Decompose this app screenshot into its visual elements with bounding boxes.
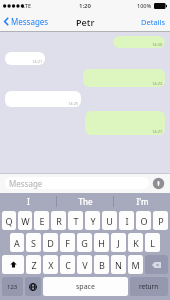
button[interactable]: 123 — [2, 277, 23, 296]
staticText: Q — [5, 215, 13, 227]
staticText: S — [31, 237, 36, 249]
button[interactable]: I — [0, 193, 56, 209]
staticText: I — [125, 215, 129, 227]
staticText: Z — [31, 259, 37, 271]
button[interactable]: V — [77, 255, 92, 274]
staticText: Message — [9, 178, 43, 189]
staticText: 14:22 — [152, 81, 163, 86]
button[interactable]: Backspace — [145, 255, 168, 274]
button[interactable]: M — [128, 255, 143, 274]
staticText: LTE — [22, 2, 31, 9]
staticText: 14:25 — [68, 101, 79, 106]
staticText: F — [65, 237, 70, 249]
staticText: The — [78, 196, 93, 207]
button[interactable]: E — [34, 211, 49, 230]
button[interactable]: Z — [26, 255, 41, 274]
button[interactable]: The — [57, 193, 113, 209]
button[interactable]: W — [18, 211, 32, 230]
staticText: E — [39, 215, 45, 227]
staticText: C — [65, 259, 71, 271]
button[interactable]: Q — [2, 211, 16, 230]
staticText: 14:27 — [152, 129, 163, 134]
button[interactable]: 14:27 — [85, 111, 165, 135]
staticText: A — [14, 237, 20, 249]
button[interactable]: D — [43, 233, 58, 252]
staticText: J — [117, 237, 120, 249]
staticText: 100% — [137, 2, 152, 9]
staticText: H — [98, 237, 105, 249]
button[interactable]: O — [136, 211, 151, 230]
button[interactable]: Message — [5, 177, 149, 189]
button[interactable]: space — [43, 277, 128, 296]
button[interactable]: A — [10, 233, 24, 252]
button[interactable]: 14:21 — [5, 52, 45, 65]
staticText: K — [133, 237, 139, 249]
staticText: V — [82, 259, 88, 271]
button[interactable]: B — [94, 255, 109, 274]
staticText: Y — [90, 215, 96, 227]
button[interactable]: return — [130, 277, 168, 296]
staticText: L — [150, 237, 155, 249]
staticText: O — [140, 215, 148, 227]
button[interactable]: N — [111, 255, 126, 274]
button[interactable]: I'm — [114, 193, 170, 209]
staticText: I — [27, 196, 30, 207]
staticText: P — [158, 215, 164, 227]
button[interactable]: 14:20 — [113, 36, 165, 48]
staticText: N — [115, 259, 122, 271]
staticText: G — [81, 237, 88, 249]
button[interactable]: Shift — [2, 255, 24, 274]
button[interactable]: K — [128, 233, 143, 252]
staticText: 123 — [7, 283, 18, 291]
staticText: T — [73, 215, 79, 227]
button[interactable]: I — [119, 211, 134, 230]
button[interactable]: H — [94, 233, 109, 252]
button[interactable]: Messages — [2, 13, 51, 30]
staticText: 14:21 — [32, 59, 43, 64]
staticText: U — [106, 215, 113, 227]
staticText: X — [48, 259, 54, 271]
button[interactable]: X — [43, 255, 58, 274]
button[interactable]: Record audio message — [152, 177, 165, 190]
staticText: 1:20 — [79, 2, 91, 10]
button[interactable]: Change keyboard language — [25, 277, 41, 296]
staticText: R — [56, 215, 62, 227]
staticText: 14:20 — [152, 42, 163, 47]
button[interactable]: Details — [139, 14, 168, 30]
staticText: Details — [141, 17, 166, 27]
button[interactable]: T — [68, 211, 83, 230]
staticText: Messages — [11, 16, 49, 27]
button[interactable]: S — [26, 233, 41, 252]
staticText: M — [131, 259, 140, 271]
button[interactable]: U — [102, 211, 117, 230]
staticText: Petr — [76, 16, 95, 28]
button[interactable]: F — [60, 233, 75, 252]
button[interactable]: P — [153, 211, 168, 230]
staticText: W — [21, 215, 30, 227]
button[interactable]: L — [145, 233, 160, 252]
button[interactable]: G — [77, 233, 92, 252]
button[interactable]: R — [51, 211, 66, 230]
button[interactable]: 14:22 — [83, 69, 165, 87]
button[interactable]: 14:25 — [5, 91, 81, 107]
button[interactable]: C — [60, 255, 75, 274]
staticText: return — [139, 282, 159, 291]
staticText: D — [47, 237, 54, 249]
staticText: space — [76, 282, 95, 292]
button[interactable]: Y — [85, 211, 100, 230]
staticText: B — [99, 259, 105, 271]
staticText: I'm — [136, 196, 149, 207]
button[interactable]: J — [111, 233, 126, 252]
